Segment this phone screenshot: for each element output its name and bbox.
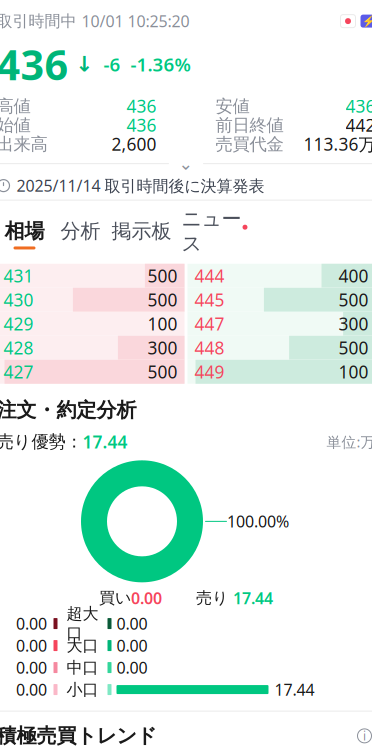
staticText: 0.00: [116, 635, 147, 656]
staticText: 447: [194, 312, 224, 335]
button[interactable]: 2025/11/14 取引時間後に決算発表: [0, 174, 372, 198]
button[interactable]: 相場: [0, 219, 52, 249]
staticText: ニュース: [181, 207, 241, 256]
staticText: 0.00: [116, 613, 147, 634]
staticText: 300: [338, 312, 368, 335]
staticText: 449: [194, 360, 224, 383]
button[interactable]: 説明: [353, 725, 372, 747]
staticText: 小口: [66, 680, 98, 699]
staticText: 500: [147, 288, 177, 311]
staticText: ⚡: [361, 15, 372, 27]
staticText: 100.00%: [227, 511, 289, 532]
staticText: 0.00: [131, 587, 162, 608]
staticText: 430: [3, 288, 33, 311]
staticText: -1.36%: [120, 52, 190, 77]
button[interactable]: ニュース: [174, 207, 254, 262]
staticText: 428: [3, 336, 33, 359]
staticText: 出来高: [0, 133, 47, 155]
staticText: 300: [147, 336, 177, 359]
staticText: 113.36万: [303, 133, 372, 156]
staticText: 431: [3, 264, 33, 287]
staticText: 2,600: [111, 133, 156, 156]
staticText: 100: [147, 312, 177, 335]
staticText: 445: [194, 288, 224, 311]
staticText: 427: [3, 360, 33, 383]
staticText: 500: [147, 264, 177, 287]
staticText: 448: [194, 336, 224, 359]
staticText: 17.44: [233, 587, 273, 608]
staticText: i: [363, 728, 366, 744]
staticText: 436: [126, 114, 156, 137]
staticText: 500: [147, 360, 177, 383]
staticText: 0.00: [16, 679, 47, 700]
staticText: 掲示板: [111, 219, 171, 243]
button[interactable]: 掲示板: [108, 219, 174, 249]
staticText: 積極売買トレンド: [0, 724, 156, 748]
staticText: 前日終値: [215, 114, 283, 136]
staticText: ↓: [68, 52, 93, 76]
staticText: 取引時間中: [0, 11, 76, 31]
staticText: 10/01 10:25:20: [81, 10, 189, 32]
staticText: 売り優勢：: [0, 431, 82, 452]
staticText: 注文・約定分析: [0, 398, 136, 422]
staticText: 買い: [99, 588, 131, 608]
staticText: 大口: [66, 636, 98, 655]
staticText: 中口: [66, 658, 98, 677]
staticText: 売買代金: [215, 133, 283, 155]
staticText: 17.44: [82, 430, 127, 453]
staticText: 0.00: [116, 657, 147, 678]
button[interactable]: 分析: [52, 219, 108, 249]
staticText: 超大口: [66, 604, 98, 643]
staticText: 500: [338, 288, 368, 311]
staticText: 売り: [196, 588, 233, 608]
staticText: 単位:万: [326, 432, 372, 452]
staticText: 0.00: [16, 635, 47, 656]
staticText: 400: [338, 264, 368, 287]
staticText: ⌄: [178, 154, 193, 173]
staticText: 始値: [0, 114, 30, 136]
staticText: 500: [338, 336, 368, 359]
staticText: 100: [338, 360, 368, 383]
staticText: 分析: [60, 219, 100, 243]
staticText: -6: [93, 52, 120, 77]
staticText: 17.44: [274, 679, 314, 700]
button[interactable]: 詳細を表示: [0, 154, 372, 174]
staticText: 442: [345, 114, 372, 137]
staticText: 429: [3, 312, 33, 335]
staticText: 436: [0, 37, 68, 92]
staticText: 436: [126, 95, 156, 118]
staticText: 444: [194, 264, 224, 287]
staticText: 0.00: [16, 613, 47, 634]
staticText: 2025/11/14 取引時間後に決算発表: [16, 175, 264, 196]
staticText: 0.00: [16, 657, 47, 678]
staticText: 相場: [4, 219, 44, 243]
staticText: 安値: [215, 95, 249, 117]
staticText: 高値: [0, 95, 30, 117]
staticText: 436: [345, 95, 372, 118]
